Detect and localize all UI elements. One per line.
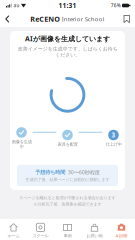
staticText: AI診断 xyxy=(115,233,127,238)
staticText: お買い物 xyxy=(86,233,102,238)
staticText: ※ ページを離れると処理が中断される場合があります xyxy=(19,195,115,200)
staticText: スクール xyxy=(32,233,48,238)
staticText: 家具を配置 xyxy=(57,142,77,147)
staticText: 仕上げ中 xyxy=(105,142,121,147)
staticText: 3 xyxy=(111,131,115,139)
button[interactable]: Bookmark xyxy=(117,12,135,26)
staticText: au xyxy=(13,3,19,8)
staticText: 11:31 xyxy=(58,1,76,10)
button[interactable]: スクール xyxy=(27,219,54,240)
staticText: 76% xyxy=(111,2,121,9)
staticText: 予想待ち時間 xyxy=(35,169,65,175)
button[interactable]: Back xyxy=(0,12,15,26)
staticText: 生成完了後、結果ページに自動的に移動します xyxy=(25,177,109,182)
staticText: AIが画像を生成しています xyxy=(25,34,110,43)
staticText: ReCENO xyxy=(30,14,60,24)
staticText: 事例 xyxy=(63,233,71,238)
staticText: ホーム xyxy=(7,233,19,238)
staticText: Interior School xyxy=(62,15,105,23)
button[interactable]: AI診断 xyxy=(108,218,135,240)
button[interactable]: 事例 xyxy=(54,219,81,240)
staticText: ※ 分析完了後、改善案を確認できます xyxy=(33,201,101,207)
button[interactable]: ホーム xyxy=(0,219,27,240)
staticText: 改善イメージを生成中です。しばらくお待ち ください。 xyxy=(17,46,117,58)
staticText: 30〜60秒程度 xyxy=(68,169,100,175)
button[interactable]: お買い物 xyxy=(81,219,108,240)
staticText: 画像を生成中 xyxy=(11,139,31,149)
